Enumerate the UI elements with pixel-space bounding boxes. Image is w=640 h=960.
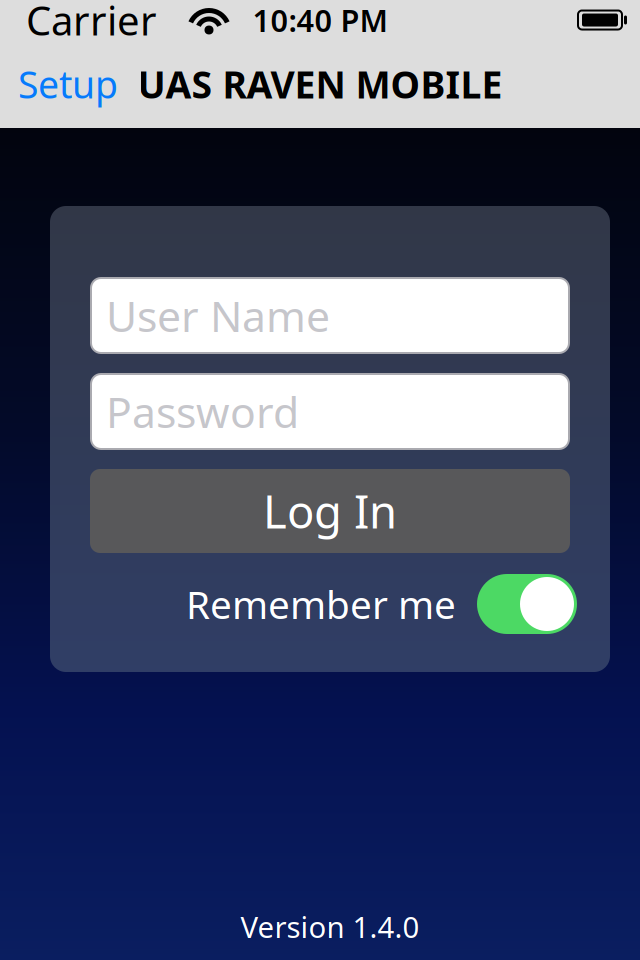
staticText: Version 1.4.0 bbox=[240, 907, 419, 946]
staticText: User Name bbox=[106, 287, 330, 344]
staticText: UAS RAVEN MOBILE bbox=[137, 59, 502, 109]
button[interactable]: Log In bbox=[90, 469, 570, 553]
button[interactable] bbox=[477, 574, 577, 634]
staticText: 10:40 PM bbox=[252, 0, 387, 40]
staticText: Setup bbox=[18, 59, 118, 109]
staticText: Log In bbox=[263, 481, 397, 541]
staticText: Password bbox=[106, 383, 299, 440]
button[interactable]: Setup bbox=[0, 53, 118, 115]
staticText: Remember me bbox=[186, 578, 456, 630]
button[interactable]: User Name bbox=[90, 277, 570, 354]
button[interactable]: Password bbox=[90, 373, 570, 450]
staticText: Carrier bbox=[26, 0, 157, 46]
